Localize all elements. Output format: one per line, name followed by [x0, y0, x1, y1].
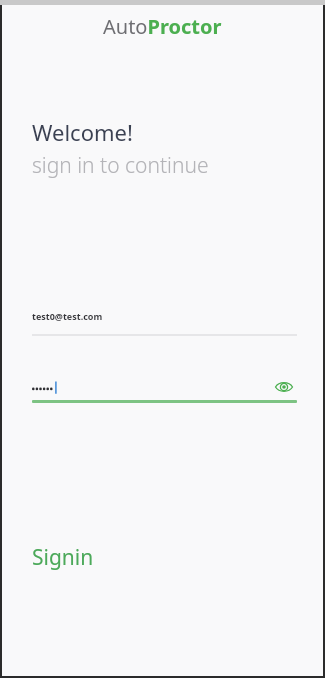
staticText: test0@test.com	[32, 310, 103, 322]
staticText: Signin	[32, 543, 94, 572]
button[interactable]: test0@test.com	[32, 310, 297, 336]
staticText: AutoProctor	[103, 13, 222, 40]
staticText: Welcome!	[32, 117, 133, 147]
staticText: sign in to continue	[32, 151, 209, 180]
button[interactable]: Show password	[32, 374, 297, 403]
button[interactable]: Show password	[271, 374, 297, 400]
button[interactable]: Signin	[32, 543, 94, 572]
